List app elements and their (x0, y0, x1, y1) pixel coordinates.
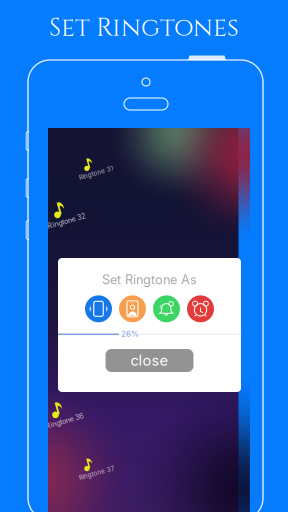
staticText: Ringtone 32 (44, 217, 83, 226)
staticText: Ringtone 36 (42, 417, 81, 426)
button[interactable]: Notification (152, 294, 181, 323)
button[interactable]: close (105, 349, 193, 372)
staticText: 26% (121, 329, 139, 339)
button[interactable]: Ringtone (84, 294, 113, 323)
staticText: Set Ringtone As (102, 272, 197, 287)
staticText: Ringtone 31 (76, 170, 111, 177)
button[interactable]: Contact ringtone (118, 294, 147, 323)
button[interactable]: Alarm (186, 294, 215, 323)
staticText: close (130, 352, 168, 369)
staticText: Ringtone 37 (76, 470, 112, 477)
staticText: Set Ringtones (49, 11, 239, 45)
